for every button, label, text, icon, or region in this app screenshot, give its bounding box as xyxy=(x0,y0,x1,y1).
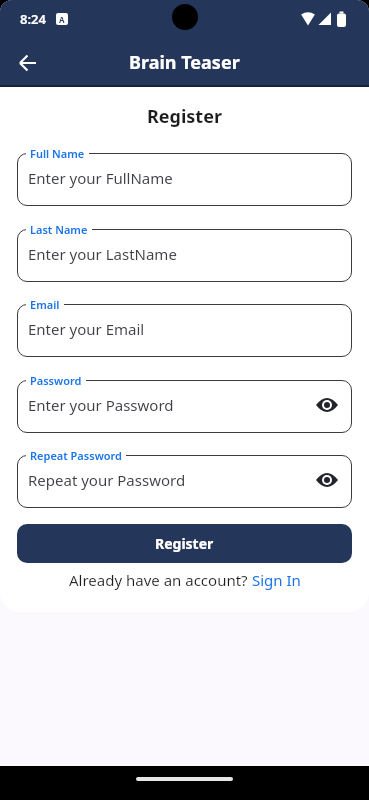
button[interactable]: Repeat your Password xyxy=(17,455,352,508)
staticText: Enter your LastName xyxy=(28,244,177,264)
staticText: Repeat your Password xyxy=(28,470,186,490)
staticText: Brain Teaser xyxy=(129,50,240,75)
staticText: Register xyxy=(0,104,369,129)
staticText: Enter your Password xyxy=(28,395,174,415)
staticText: Repeat Password xyxy=(30,448,122,463)
button[interactable]: Enter your Password xyxy=(17,380,352,433)
staticText: A xyxy=(59,14,65,25)
button[interactable]: Sign In xyxy=(252,570,301,590)
staticText: Last Name xyxy=(30,222,88,237)
button[interactable] xyxy=(12,47,44,79)
button[interactable]: Enter your FullName xyxy=(17,153,352,206)
staticText: Register xyxy=(155,534,214,553)
staticText: Full Name xyxy=(30,146,85,161)
staticText: Email xyxy=(30,297,60,312)
button[interactable]: Register xyxy=(17,524,352,563)
staticText: Password xyxy=(30,373,82,388)
button[interactable]: Enter your LastName xyxy=(17,229,352,282)
staticText: 8:24 xyxy=(20,10,46,28)
button[interactable] xyxy=(316,469,338,491)
staticText: Already have an account? xyxy=(69,570,252,590)
staticText: Enter your Email xyxy=(28,319,145,339)
button[interactable] xyxy=(316,394,338,416)
staticText: Enter your FullName xyxy=(28,168,173,188)
button[interactable]: Enter your Email xyxy=(17,304,352,357)
